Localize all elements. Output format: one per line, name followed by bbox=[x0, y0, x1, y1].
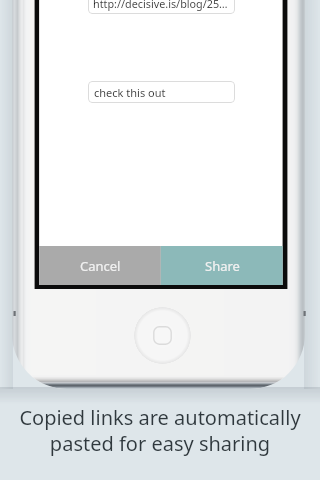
staticText: Copied links are automatically pasted fo… bbox=[19, 404, 301, 456]
button[interactable]: Share bbox=[161, 246, 283, 285]
staticText: http://decisive.is/blog/25… bbox=[93, 0, 228, 11]
button[interactable]: Cancel bbox=[39, 246, 161, 285]
button[interactable]: http://decisive.is/blog/25… bbox=[88, 0, 235, 14]
staticText: Cancel bbox=[80, 257, 121, 275]
button[interactable]: Home bbox=[134, 307, 191, 364]
button[interactable]: check this out bbox=[88, 81, 235, 103]
staticText: Share bbox=[205, 257, 240, 275]
staticText: check this out bbox=[94, 85, 166, 100]
